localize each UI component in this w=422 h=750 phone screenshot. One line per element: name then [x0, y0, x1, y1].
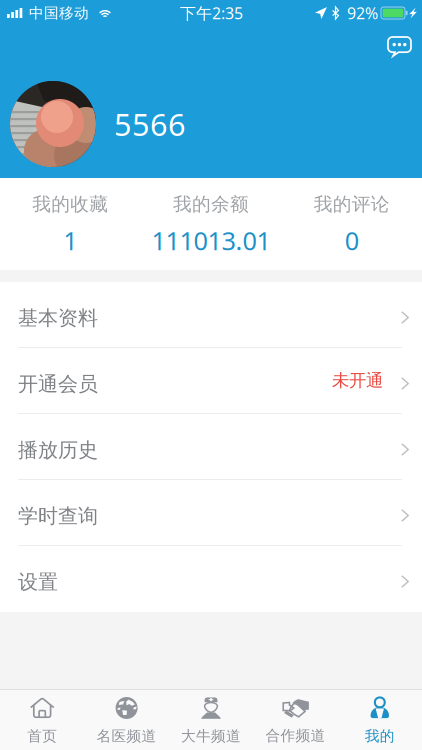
button[interactable]: 基本资料 [0, 282, 422, 348]
button[interactable]: 我的 [338, 690, 422, 750]
button[interactable]: 我的收藏 [0, 178, 141, 270]
staticText: 播放历史 [18, 438, 98, 462]
staticText: 我的 [365, 727, 395, 745]
button[interactable]: 大牛频道 [169, 690, 253, 750]
button[interactable]: 设置 [0, 546, 422, 612]
staticText: 我的收藏 [32, 193, 108, 216]
staticText: 设置 [18, 570, 58, 594]
staticText: 名医频道 [97, 727, 157, 745]
staticText: 大牛频道 [181, 727, 241, 745]
button[interactable]: 我的评论 [281, 178, 422, 270]
button[interactable]: Messages [378, 26, 422, 62]
button[interactable]: 合作频道 [253, 690, 338, 750]
staticText: 111013.01 [151, 224, 270, 257]
staticText: 我的评论 [314, 193, 390, 216]
button[interactable]: 名医频道 [84, 690, 169, 750]
staticText: 基本资料 [18, 306, 98, 330]
staticText: 92% [347, 2, 378, 24]
button[interactable]: 首页 [0, 690, 84, 750]
staticText: 下午2:35 [180, 2, 243, 24]
staticText: 开通会员 [18, 372, 98, 396]
staticText: 中国移动 [29, 4, 89, 22]
staticText: 0 [345, 224, 359, 257]
button[interactable]: 学时查询 [0, 480, 422, 546]
staticText: 首页 [27, 727, 57, 745]
staticText: 5566 [114, 104, 186, 144]
staticText: 1 [63, 224, 77, 257]
button[interactable]: 播放历史 [0, 414, 422, 480]
staticText: 我的余额 [173, 193, 249, 216]
button[interactable]: 我的余额 [141, 178, 281, 270]
button[interactable]: 开通会员 [0, 348, 422, 414]
staticText: 学时查询 [18, 504, 98, 528]
staticText: 未开通 [332, 370, 383, 391]
staticText: 合作频道 [265, 726, 325, 744]
